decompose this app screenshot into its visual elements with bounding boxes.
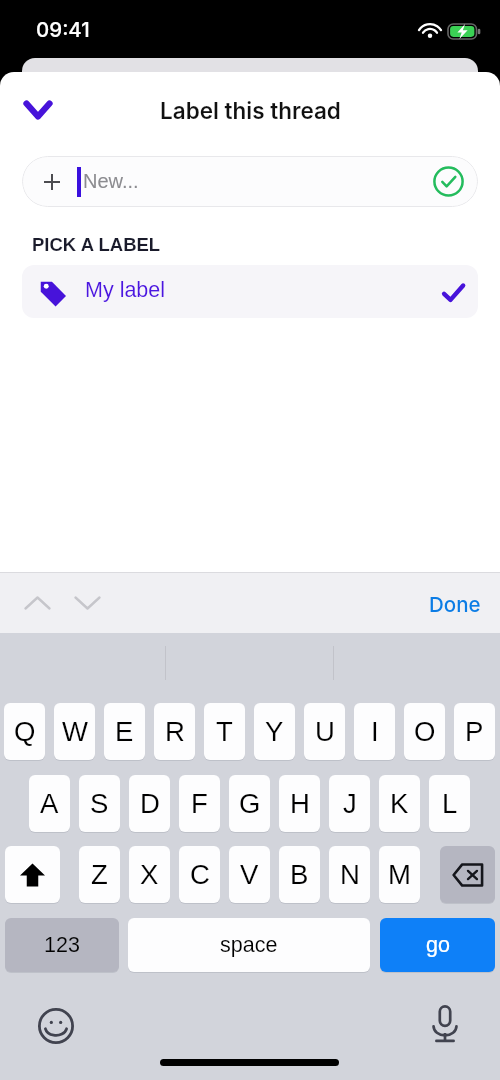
- button[interactable]: New...: [22, 156, 478, 207]
- button[interactable]: C: [179, 846, 220, 903]
- button[interactable]: S: [79, 775, 120, 832]
- staticText: go: [426, 933, 450, 957]
- button[interactable]: D: [129, 775, 170, 832]
- button[interactable]: go: [380, 918, 495, 972]
- staticText: T: [216, 716, 233, 747]
- button[interactable]: Shift: [5, 846, 60, 903]
- button[interactable]: Next field: [64, 580, 110, 626]
- staticText: W: [62, 716, 88, 747]
- button[interactable]: U: [304, 703, 345, 760]
- staticText: N: [340, 859, 360, 890]
- button[interactable]: A: [29, 775, 70, 832]
- button[interactable]: F: [179, 775, 220, 832]
- button[interactable]: Backspace: [440, 846, 495, 903]
- button[interactable]: H: [279, 775, 320, 832]
- staticText: U: [315, 716, 335, 747]
- button[interactable]: M: [379, 846, 420, 903]
- button[interactable]: N: [329, 846, 370, 903]
- staticText: S: [90, 788, 109, 819]
- staticText: H: [290, 788, 310, 819]
- staticText: A: [40, 788, 59, 819]
- staticText: space: [220, 933, 278, 957]
- button[interactable]: O: [404, 703, 445, 760]
- button[interactable]: T: [204, 703, 245, 760]
- button[interactable]: P: [454, 703, 495, 760]
- staticText: D: [140, 788, 160, 819]
- staticText: B: [290, 859, 309, 890]
- button[interactable]: B: [279, 846, 320, 903]
- staticText: K: [390, 788, 409, 819]
- button[interactable]: space: [128, 918, 370, 972]
- staticText: PICK A LABEL: [32, 234, 161, 255]
- button[interactable]: Y: [254, 703, 295, 760]
- button[interactable]: E: [104, 703, 145, 760]
- button[interactable]: Dictation: [417, 996, 473, 1052]
- button[interactable]: Done: [419, 584, 491, 624]
- button[interactable]: R: [154, 703, 195, 760]
- staticText: Done: [429, 592, 481, 617]
- staticText: Q: [14, 716, 36, 747]
- button[interactable]: G: [229, 775, 270, 832]
- staticText: Y: [265, 716, 284, 747]
- staticText: P: [465, 716, 484, 747]
- staticText: G: [239, 788, 261, 819]
- staticText: C: [190, 859, 210, 890]
- staticText: 09:41: [36, 17, 90, 42]
- staticText: R: [165, 716, 185, 747]
- staticText: L: [442, 788, 458, 819]
- staticText: V: [240, 859, 259, 890]
- button[interactable]: Collapse: [14, 86, 62, 134]
- button[interactable]: W: [54, 703, 95, 760]
- staticText: My label: [85, 278, 166, 302]
- staticText: J: [343, 788, 357, 819]
- button[interactable]: I: [354, 703, 395, 760]
- staticText: M: [388, 859, 411, 890]
- staticText: E: [115, 716, 134, 747]
- staticText: I: [371, 716, 379, 747]
- button[interactable]: K: [379, 775, 420, 832]
- button[interactable]: Z: [79, 846, 120, 903]
- button[interactable]: L: [429, 775, 470, 832]
- button[interactable]: J: [329, 775, 370, 832]
- button[interactable]: Previous field: [14, 580, 60, 626]
- staticText: 123: [44, 933, 80, 957]
- button[interactable]: My label: [22, 265, 478, 318]
- button[interactable]: Q: [4, 703, 45, 760]
- staticText: Label this thread: [160, 97, 341, 124]
- button[interactable]: 123: [5, 918, 119, 972]
- staticText: O: [414, 716, 436, 747]
- staticText: New...: [83, 170, 139, 192]
- staticText: X: [140, 859, 159, 890]
- button[interactable]: Emoji: [28, 998, 84, 1054]
- staticText: F: [191, 788, 208, 819]
- button[interactable]: X: [129, 846, 170, 903]
- staticText: Z: [91, 859, 108, 890]
- button[interactable]: V: [229, 846, 270, 903]
